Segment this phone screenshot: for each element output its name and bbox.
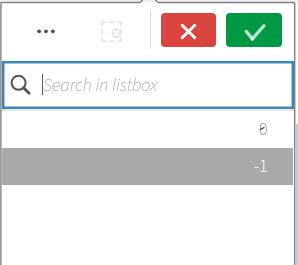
button[interactable]: 0 <box>2 111 293 148</box>
button[interactable]: Confirm selection <box>226 13 282 47</box>
button[interactable]: More options <box>32 17 60 45</box>
staticText: -1 <box>254 154 268 180</box>
button[interactable]: -1 <box>2 148 293 185</box>
button[interactable]: Clear selections <box>97 17 125 45</box>
button[interactable]: Cancel selection <box>161 13 216 47</box>
staticText: 0 <box>259 117 268 143</box>
staticText: Search in listbox <box>43 73 158 99</box>
button[interactable]: Search in listbox <box>2 61 294 109</box>
